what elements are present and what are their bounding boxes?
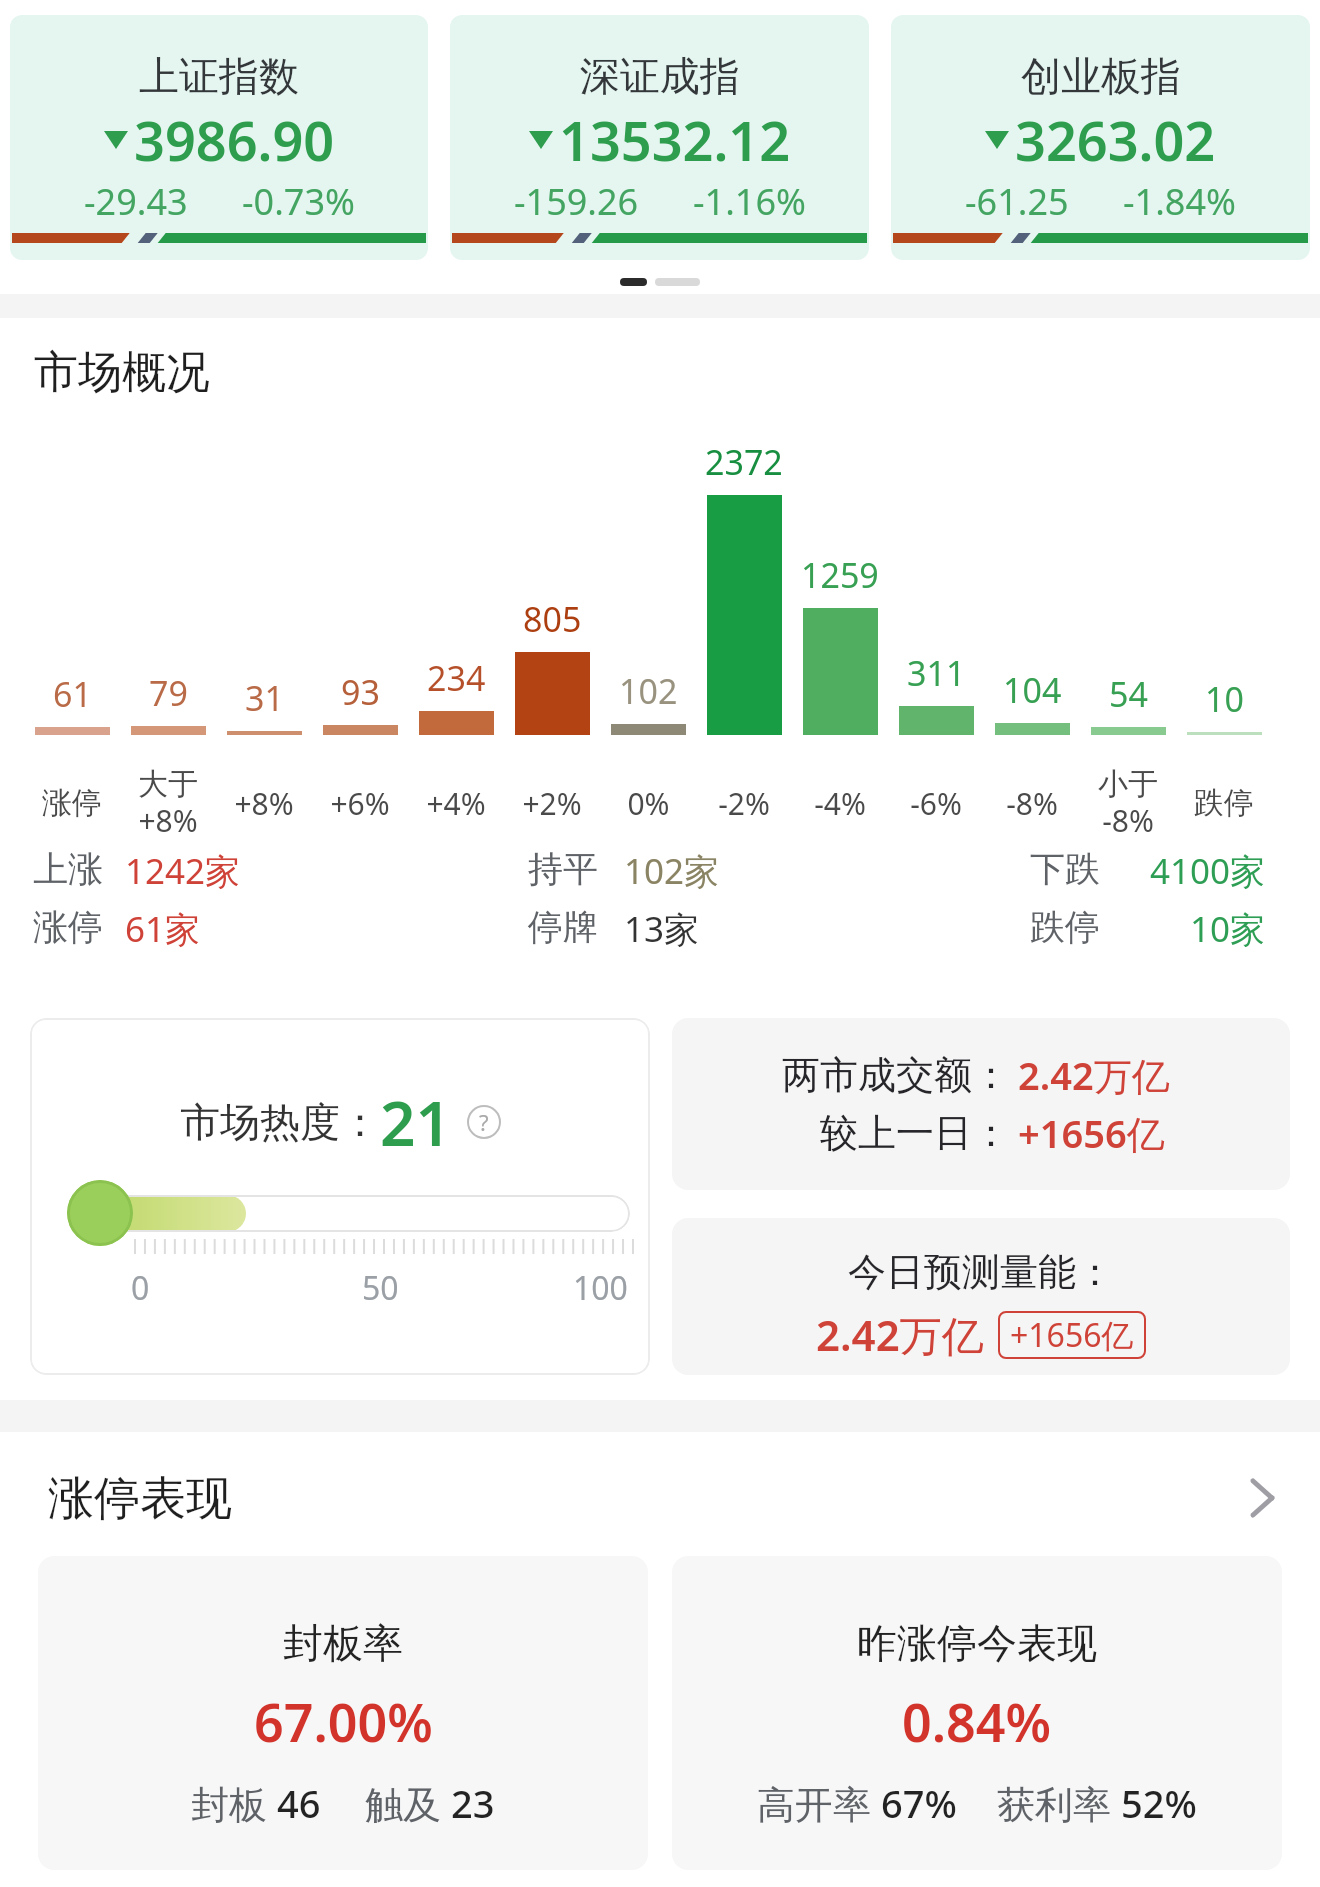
staticText: 46: [277, 1777, 321, 1829]
staticText: 市场概况: [34, 345, 210, 400]
staticText: -1.84%: [1123, 177, 1236, 226]
staticText: 4100家: [1150, 847, 1266, 893]
staticText: -8%: [1006, 783, 1058, 824]
staticText: 2.42万亿: [816, 1306, 984, 1363]
staticText: +8%: [234, 783, 294, 824]
staticText: 停牌: [528, 905, 598, 949]
staticText: 50: [362, 1266, 399, 1310]
staticText: 52%: [1121, 1777, 1197, 1829]
staticText: 61家: [125, 905, 201, 951]
staticText: 昨涨停今表现: [857, 1618, 1097, 1668]
staticText: -159.26: [514, 177, 639, 226]
staticText: 10: [1205, 676, 1244, 722]
button[interactable]: 涨停表现: [0, 1470, 1320, 1526]
staticText: -0.73%: [242, 177, 355, 226]
staticText: 大于 +8%: [138, 765, 198, 841]
staticText: -61.25: [965, 177, 1069, 226]
staticText: +6%: [330, 783, 390, 824]
staticText: 涨停表现: [48, 1470, 232, 1526]
button[interactable]: 深证成指: [450, 15, 869, 260]
staticText: -1.16%: [693, 177, 806, 226]
staticText: 2372: [705, 439, 783, 485]
staticText: -29.43: [84, 177, 188, 226]
staticText: 54: [1109, 671, 1148, 717]
staticText: 10家: [1190, 905, 1266, 951]
staticText: 两市成交额：: [782, 1051, 1010, 1099]
staticText: 下跌: [1030, 847, 1100, 891]
staticText: 封板: [191, 1777, 277, 1829]
staticText: -4%: [814, 783, 866, 824]
staticText: 100: [573, 1266, 628, 1310]
button[interactable]: 上证指数: [10, 15, 428, 260]
staticText: 持平: [528, 847, 598, 891]
staticText: 创业板指: [1021, 51, 1181, 101]
button[interactable]: 市场热度：: [30, 1018, 650, 1375]
staticText: 805: [523, 596, 582, 642]
staticText: 234: [427, 655, 486, 701]
staticText: 93: [341, 669, 380, 715]
staticText: 3986.90: [134, 103, 335, 177]
staticText: 涨停: [33, 905, 103, 949]
button[interactable]: 两市成交额：: [672, 1018, 1290, 1190]
staticText: 104: [1003, 667, 1062, 713]
staticText: 上涨: [33, 847, 103, 891]
staticText: 2.42万亿: [1018, 1049, 1170, 1101]
button[interactable]: 昨涨停今表现: [672, 1556, 1282, 1870]
staticText: 13532.12: [559, 103, 791, 177]
staticText: 0.84%: [902, 1686, 1052, 1757]
staticText: 跌停: [1030, 905, 1100, 949]
button[interactable]: 封板率: [38, 1556, 648, 1870]
staticText: 79: [149, 670, 188, 716]
staticText: 1242家: [125, 847, 241, 893]
staticText: 23: [451, 1777, 495, 1829]
staticText: 102: [619, 668, 678, 714]
staticText: 67.00%: [254, 1686, 433, 1757]
staticText: ?: [479, 1107, 489, 1137]
staticText: 61: [53, 671, 92, 717]
staticText: +4%: [426, 783, 486, 824]
staticText: 跌停: [1194, 784, 1254, 822]
staticText: -6%: [910, 783, 962, 824]
staticText: 102家: [624, 847, 720, 893]
staticText: 0%: [627, 783, 670, 824]
staticText: 上证指数: [139, 51, 299, 101]
staticText: 311: [907, 650, 966, 696]
staticText: 获利率: [997, 1777, 1121, 1829]
staticText: 较上一日：: [820, 1109, 1010, 1157]
staticText: 封板率: [283, 1618, 403, 1668]
staticText: 高开率: [757, 1777, 881, 1829]
staticText: 0: [131, 1266, 150, 1310]
staticText: 1259: [801, 552, 879, 598]
staticText: 31: [245, 675, 284, 721]
staticText: +1656亿: [1010, 1313, 1134, 1357]
staticText: +2%: [522, 783, 582, 824]
staticText: 市场热度：: [180, 1097, 380, 1147]
staticText: 3263.02: [1015, 103, 1216, 177]
staticText: 今日预测量能：: [848, 1248, 1114, 1296]
staticText: 触及: [365, 1777, 451, 1829]
button[interactable]: 创业板指: [891, 15, 1310, 260]
staticText: 67%: [881, 1777, 957, 1829]
staticText: -2%: [718, 783, 770, 824]
staticText: 深证成指: [580, 51, 740, 101]
staticText: 涨停: [42, 784, 102, 822]
staticText: +1656亿: [1018, 1107, 1165, 1159]
staticText: 小于 -8%: [1098, 765, 1158, 841]
staticText: 21: [380, 1080, 451, 1164]
button[interactable]: 今日预测量能：: [672, 1218, 1290, 1375]
staticText: 13家: [624, 905, 700, 951]
